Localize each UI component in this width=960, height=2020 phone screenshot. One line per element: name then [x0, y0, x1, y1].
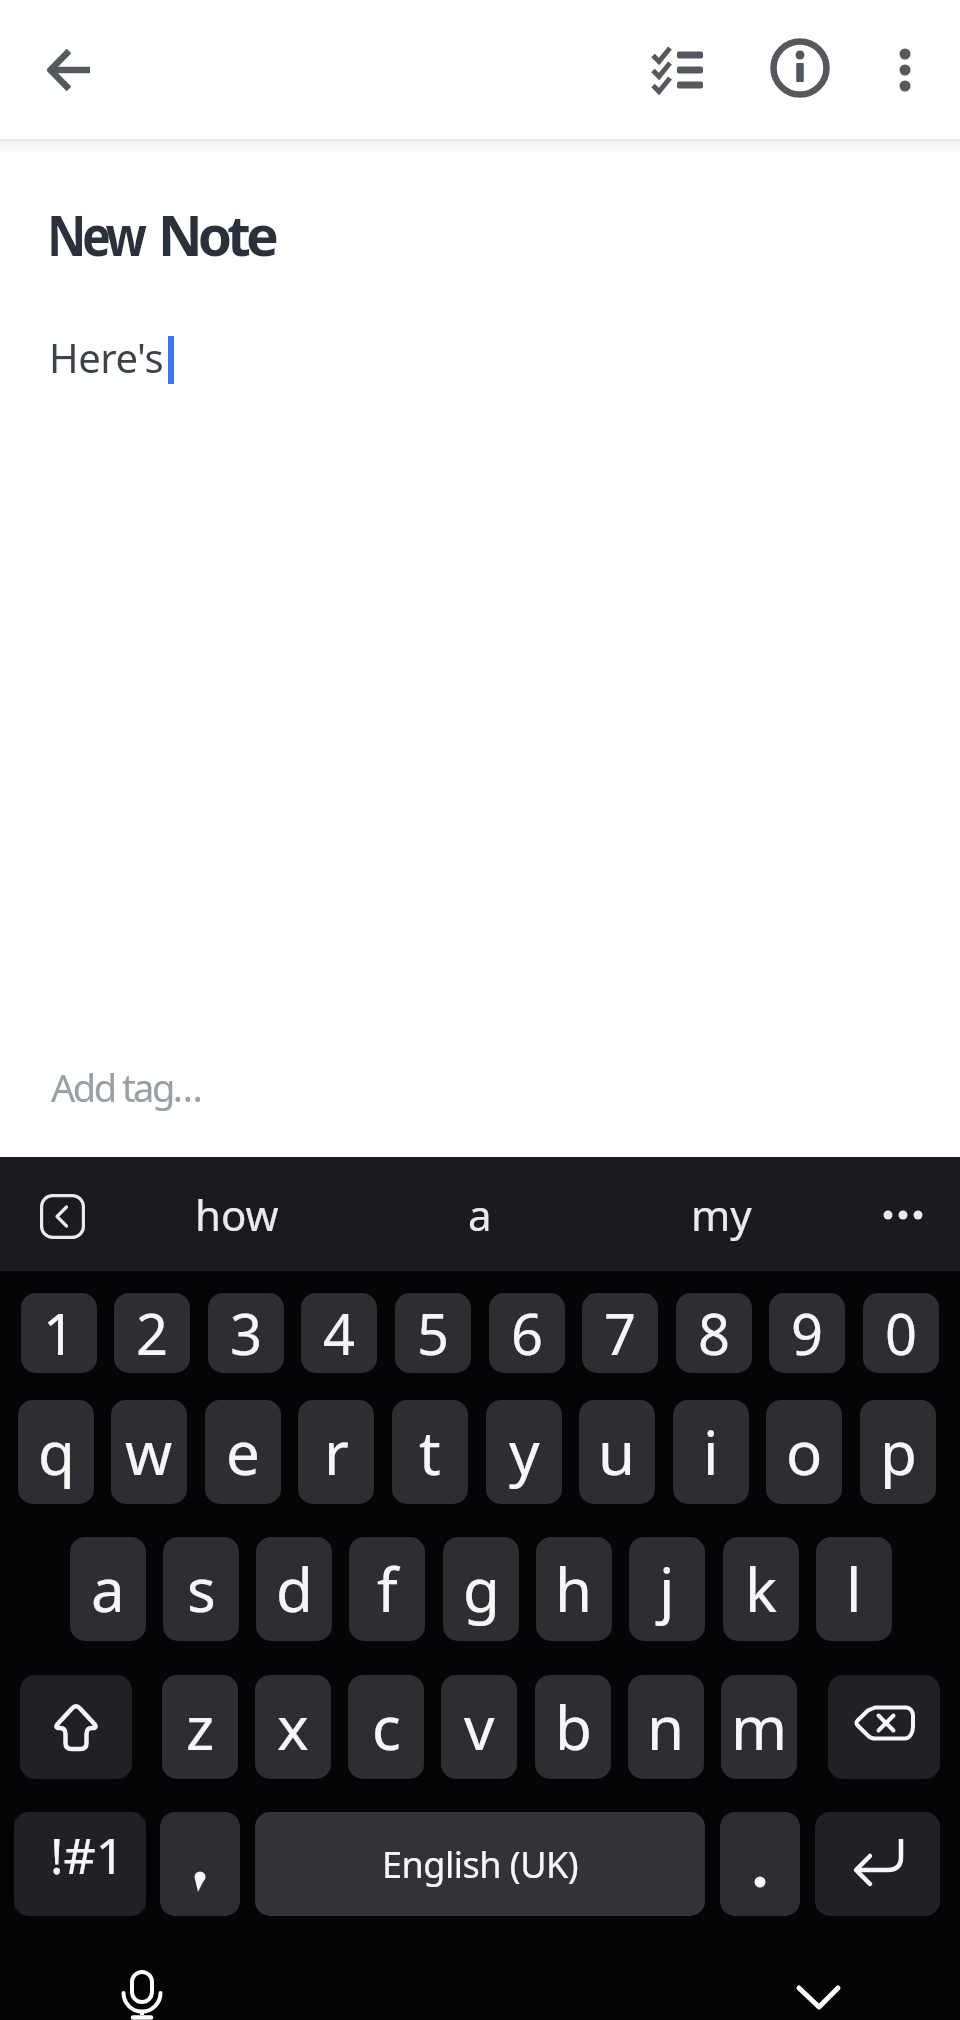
button[interactable]: k	[723, 1537, 799, 1641]
staticText: h	[555, 1548, 593, 1630]
button[interactable]: English (UK)	[255, 1812, 705, 1916]
button[interactable]: d	[256, 1537, 332, 1641]
button[interactable]: h	[536, 1537, 612, 1641]
staticText: 4	[323, 1295, 356, 1371]
button[interactable]: a	[373, 1160, 587, 1268]
button[interactable]: my	[614, 1160, 828, 1268]
button[interactable]: 8	[676, 1293, 752, 1373]
staticText: 9	[791, 1295, 824, 1371]
button[interactable]: q	[18, 1400, 94, 1504]
button[interactable]: 3	[208, 1293, 284, 1373]
staticText: t	[419, 1411, 441, 1493]
button[interactable]: 1	[21, 1293, 97, 1373]
staticText: g	[463, 1548, 500, 1630]
button[interactable]: 9	[769, 1293, 845, 1373]
button[interactable]	[720, 1812, 800, 1916]
button[interactable]: 0	[863, 1293, 939, 1373]
staticText: New	[47, 197, 143, 272]
button[interactable]: 2	[114, 1293, 190, 1373]
button[interactable]	[815, 1812, 940, 1916]
button[interactable]	[160, 1812, 240, 1916]
button[interactable]	[783, 1972, 855, 2020]
button[interactable]	[828, 1675, 940, 1779]
staticText: k	[745, 1548, 778, 1630]
staticText: 0	[885, 1295, 918, 1371]
button[interactable]: 6	[489, 1293, 565, 1373]
staticText: w	[125, 1411, 173, 1493]
staticText: j	[659, 1548, 675, 1630]
button[interactable]: e	[205, 1400, 281, 1504]
button[interactable]: z	[162, 1675, 238, 1779]
staticText: f	[377, 1548, 398, 1630]
button[interactable]: Add tag…	[40, 1052, 440, 1122]
staticText: m	[731, 1686, 788, 1768]
staticText: Here's	[49, 330, 164, 384]
staticText: 1	[43, 1295, 76, 1371]
button[interactable]: s	[163, 1537, 239, 1641]
button[interactable]: r	[298, 1400, 374, 1504]
staticText: e	[226, 1411, 260, 1493]
button[interactable]: t	[392, 1400, 468, 1504]
button[interactable]: l	[816, 1537, 892, 1641]
staticText: 5	[417, 1295, 450, 1371]
button[interactable]	[28, 1182, 96, 1250]
staticText: 7	[604, 1295, 637, 1371]
staticText: u	[598, 1411, 636, 1493]
staticText: c	[372, 1686, 401, 1768]
button[interactable]: how	[130, 1160, 344, 1268]
button[interactable]: f	[349, 1537, 425, 1641]
button[interactable]: m	[721, 1675, 797, 1779]
button[interactable]: y	[486, 1400, 562, 1504]
staticText: z	[186, 1686, 215, 1768]
staticText: i	[703, 1411, 719, 1493]
staticText: b	[555, 1686, 592, 1768]
button[interactable]: w	[111, 1400, 187, 1504]
button[interactable]: p	[860, 1400, 936, 1504]
button[interactable]: o	[766, 1400, 842, 1504]
button[interactable]: u	[579, 1400, 655, 1504]
staticText: r	[324, 1411, 349, 1493]
button[interactable]: v	[441, 1675, 517, 1779]
staticText: how	[195, 1186, 279, 1243]
button[interactable]: i	[673, 1400, 749, 1504]
button[interactable]	[647, 40, 707, 100]
button[interactable]: a	[70, 1537, 146, 1641]
button[interactable]: b	[535, 1675, 611, 1779]
staticText: o	[786, 1411, 823, 1493]
button[interactable]: j	[629, 1537, 705, 1641]
staticText: q	[38, 1411, 75, 1493]
staticText: 2	[136, 1295, 169, 1371]
button[interactable]	[40, 40, 100, 100]
button[interactable]	[20, 1675, 132, 1779]
button[interactable]	[858, 1180, 948, 1250]
button[interactable]	[106, 1958, 178, 2020]
staticText: !#1	[50, 1821, 125, 1889]
staticText: a	[91, 1548, 125, 1630]
staticText: 8	[698, 1295, 731, 1371]
button[interactable]: g	[443, 1537, 519, 1641]
staticText: 6	[511, 1295, 544, 1371]
staticText: 3	[230, 1295, 263, 1371]
staticText: n	[647, 1686, 685, 1768]
button[interactable]: !#1	[14, 1812, 146, 1916]
staticText: s	[187, 1548, 216, 1630]
button[interactable]: 7	[582, 1293, 658, 1373]
button[interactable]: x	[255, 1675, 331, 1779]
button[interactable]: 5	[395, 1293, 471, 1373]
staticText: y	[509, 1411, 540, 1493]
staticText: v	[464, 1686, 495, 1768]
button[interactable]: 4	[301, 1293, 377, 1373]
button[interactable]	[875, 40, 935, 100]
staticText: Add tag…	[51, 1061, 201, 1113]
staticText: a	[468, 1186, 492, 1243]
staticText: d	[276, 1548, 313, 1630]
staticText: l	[846, 1548, 862, 1630]
staticText: Note	[158, 197, 274, 272]
button[interactable]: n	[628, 1675, 704, 1779]
staticText: English (UK)	[382, 1840, 579, 1889]
button[interactable]: c	[348, 1675, 424, 1779]
staticText: p	[880, 1411, 917, 1493]
staticText: x	[277, 1686, 309, 1768]
button[interactable]	[770, 38, 830, 98]
staticText: my	[691, 1186, 752, 1243]
